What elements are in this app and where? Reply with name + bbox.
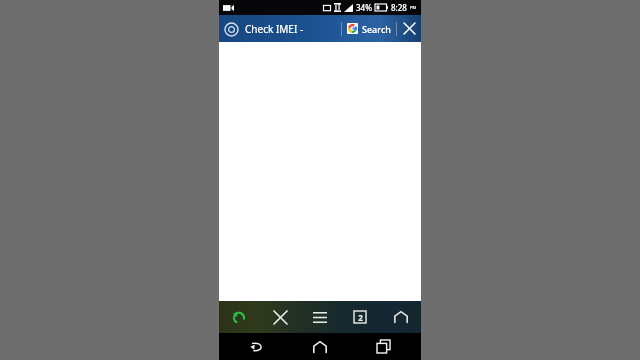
staticText: PM: [410, 5, 417, 10]
button[interactable]: Search: [347, 15, 391, 42]
button[interactable]: Recent apps: [361, 333, 405, 360]
button[interactable]: Site info: [223, 21, 239, 37]
button[interactable]: Check IMEI - IMEI.info: [239, 15, 341, 42]
button[interactable]: Menu: [300, 301, 340, 333]
button[interactable]: Back: [219, 301, 259, 333]
button[interactable]: Stop loading: [260, 301, 300, 333]
button[interactable]: Home: [381, 301, 421, 333]
staticText: Search: [362, 23, 391, 35]
staticText: 8:28: [391, 2, 407, 13]
button[interactable]: Home: [298, 333, 342, 360]
staticText: Check IMEI - IMEI.info: [245, 22, 341, 36]
button[interactable]: Close: [397, 15, 421, 42]
staticText: 34%: [356, 2, 372, 13]
button[interactable]: Tabs, 2 open: [340, 301, 380, 333]
staticText: 2: [358, 312, 363, 323]
button[interactable]: Back: [235, 333, 279, 360]
